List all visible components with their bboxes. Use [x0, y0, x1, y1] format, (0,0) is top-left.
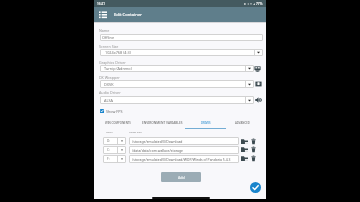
staticText: F:: [107, 157, 110, 161]
button[interactable]: Options: [254, 80, 262, 88]
staticText: ALSA: [104, 98, 113, 103]
button[interactable]: Show FPS: [100, 107, 130, 115]
button[interactable]: Add: [161, 172, 201, 182]
staticText: Show FPS: [106, 109, 123, 114]
button[interactable]: Delete: [250, 155, 257, 162]
button[interactable]: ENVIRONMENT VARIABLES: [139, 117, 185, 129]
staticText: Audio Driver: [99, 90, 121, 95]
button[interactable]: D:: [103, 137, 126, 145]
staticText: Letter: [106, 130, 113, 133]
button[interactable]: Options: [254, 65, 261, 72]
staticText: Target Path: [129, 130, 142, 133]
button[interactable]: /data/data/com.wallace/storage: [129, 146, 239, 154]
staticText: WIN COMPONENTS: [105, 121, 131, 125]
staticText: DXVK: [104, 82, 114, 87]
staticText: DRIVES: [201, 121, 211, 125]
button[interactable]: Offline: [100, 34, 263, 41]
staticText: C:: [107, 148, 110, 152]
staticText: Edit Container: [114, 12, 142, 18]
button[interactable]: WIN COMPONENTS: [98, 117, 137, 129]
staticText: Turnip (Adreno): [104, 66, 132, 71]
button[interactable]: Browse folder: [241, 155, 248, 162]
button[interactable]: Browse folder: [241, 146, 248, 153]
staticText: ADVANCED: [235, 121, 250, 125]
button[interactable]: C:: [103, 146, 126, 154]
staticText: D:: [107, 139, 111, 143]
button[interactable]: ALSA: [100, 96, 254, 104]
button[interactable]: Turnip (Adreno): [100, 65, 254, 72]
staticText: Offline: [102, 35, 115, 40]
staticText: ENVIRONMENT VARIABLES: [142, 121, 183, 125]
button[interactable]: 1024x768 (4:3): [100, 49, 263, 56]
button[interactable]: Delete: [250, 146, 257, 153]
staticText: Screen Size: [99, 44, 119, 49]
staticText: 77%: [256, 2, 263, 6]
button[interactable]: DRIVES: [185, 117, 226, 129]
button[interactable]: /storage/emulated/0/Download/WOP/Winds o…: [129, 155, 239, 163]
button[interactable]: Delete: [250, 138, 257, 145]
staticText: /storage/emulated/0/Download/WOP/Winds o…: [132, 157, 231, 162]
staticText: Graphics Driver: [99, 60, 126, 65]
staticText: 16:21: [97, 2, 106, 6]
staticText: Name: [99, 28, 110, 33]
staticText: DX Wrapper: [99, 75, 120, 80]
button[interactable]: ADVANCED: [226, 117, 258, 129]
button[interactable]: Menu: [97, 9, 108, 20]
button[interactable]: DXVK: [100, 80, 254, 88]
button[interactable]: Confirm: [250, 182, 261, 193]
staticText: 1024x768 (4:3): [105, 50, 131, 55]
staticText: /data/data/com.wallace/storage: [132, 148, 183, 153]
button[interactable]: F:: [103, 155, 126, 163]
staticText: /storage/emulated/0/Download: [132, 139, 183, 144]
staticText: Add: [178, 175, 185, 180]
button[interactable]: /storage/emulated/0/Download: [129, 137, 239, 145]
button[interactable]: Browse folder: [241, 138, 248, 145]
button[interactable]: Options: [254, 96, 262, 104]
